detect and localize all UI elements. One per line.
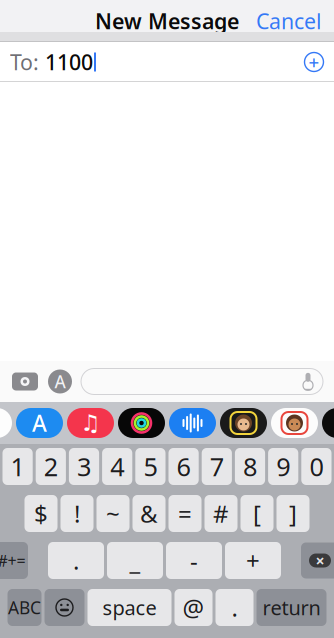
- staticText: .: [73, 545, 79, 576]
- staticText: =: [178, 498, 192, 529]
- staticText: 7: [210, 450, 224, 483]
- staticText: ABC: [8, 596, 41, 619]
- staticText: +: [246, 545, 260, 576]
- staticText: ]: [289, 498, 297, 529]
- staticText: $: [34, 498, 48, 529]
- staticText: 1100: [45, 48, 93, 76]
- staticText: #: [213, 498, 229, 529]
- staticText: 3: [77, 450, 91, 483]
- button[interactable]: Delete: [301, 542, 334, 578]
- staticText: 4: [110, 450, 124, 483]
- button[interactable]: 5: [135, 448, 165, 485]
- button[interactable]: @: [174, 589, 212, 626]
- button[interactable]: Add contact: [294, 42, 334, 82]
- button[interactable]: +: [225, 542, 281, 579]
- staticText: New Message: [95, 7, 239, 35]
- staticText: ♫: [80, 410, 100, 436]
- staticText: ×: [315, 550, 324, 571]
- staticText: 1: [11, 450, 25, 483]
- button[interactable]: Fitness: [118, 408, 165, 438]
- staticText: 8: [243, 450, 257, 483]
- staticText: To:: [10, 48, 45, 76]
- button[interactable]: $: [24, 495, 57, 532]
- button[interactable]: _: [107, 542, 163, 579]
- staticText: 6: [177, 450, 191, 483]
- button[interactable]: 4: [102, 448, 132, 485]
- staticText: &: [140, 498, 158, 529]
- button[interactable]: 3: [69, 448, 99, 485]
- staticText: .: [231, 592, 237, 623]
- staticText: _: [129, 545, 140, 576]
- staticText: [: [253, 498, 261, 529]
- button[interactable]: Voice Memos: [169, 408, 216, 438]
- button[interactable]: Photos: [0, 408, 12, 438]
- button[interactable]: &: [132, 495, 165, 532]
- staticText: A: [32, 408, 47, 438]
- staticText: -: [190, 545, 198, 576]
- button[interactable]: ABC: [7, 589, 41, 626]
- button[interactable]: ]: [276, 495, 309, 532]
- button[interactable]: 7: [202, 448, 232, 485]
- button[interactable]: #+=: [0, 542, 28, 579]
- button[interactable]: 0: [301, 448, 331, 485]
- button[interactable]: !: [60, 495, 93, 532]
- button[interactable]: ~: [96, 495, 129, 532]
- button[interactable]: App Store: [16, 408, 63, 438]
- staticText: 5: [143, 450, 157, 483]
- staticText: ~: [106, 498, 120, 529]
- staticText: +: [308, 50, 319, 74]
- button[interactable]: 6: [168, 448, 199, 485]
- staticText: 9: [276, 450, 290, 483]
- button[interactable]: 8: [235, 448, 265, 485]
- staticText: space: [102, 594, 156, 621]
- button[interactable]: 2: [36, 448, 66, 485]
- button[interactable]: [: [240, 495, 273, 532]
- staticText: !: [74, 498, 80, 529]
- button[interactable]: Camera: [11, 370, 39, 392]
- button[interactable]: return: [256, 589, 326, 626]
- staticText: A: [54, 370, 65, 393]
- button[interactable]: .: [48, 542, 104, 579]
- staticText: return: [262, 594, 320, 621]
- button[interactable]: space: [87, 589, 171, 626]
- button[interactable]: Stickers: [271, 408, 318, 438]
- staticText: #+=: [0, 550, 25, 571]
- staticText: @: [182, 592, 204, 623]
- staticText: Cancel: [256, 7, 322, 35]
- button[interactable]: More: [322, 408, 334, 438]
- button[interactable]: 9: [268, 448, 298, 485]
- button[interactable]: Apps: [48, 369, 72, 393]
- staticText: 0: [309, 450, 323, 483]
- button[interactable]: Music: [67, 408, 114, 438]
- button[interactable]: =: [168, 495, 201, 532]
- button[interactable]: Emoji: [44, 589, 84, 626]
- button[interactable]: Memoji: [220, 408, 267, 438]
- button[interactable]: #: [204, 495, 237, 532]
- button[interactable]: 1: [2, 448, 33, 485]
- button[interactable]: -: [166, 542, 222, 579]
- button[interactable]: .: [215, 589, 253, 626]
- button[interactable]: Cancel: [244, 1, 334, 41]
- staticText: 2: [44, 450, 58, 483]
